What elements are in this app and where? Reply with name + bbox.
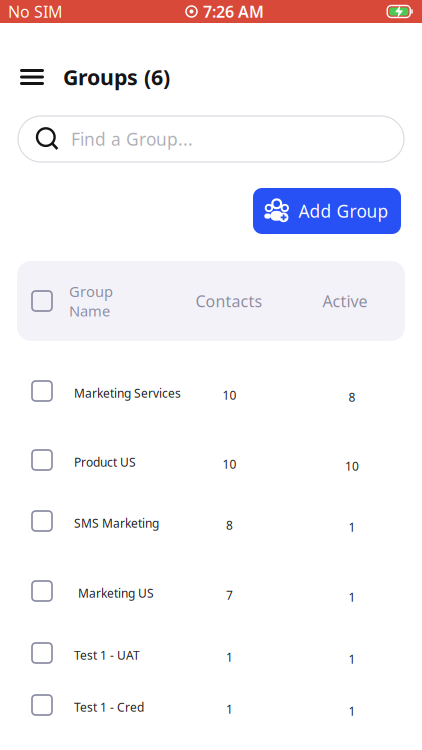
staticText: Active — [322, 290, 367, 312]
button[interactable]: Menu — [11, 58, 53, 96]
staticText: Group Name — [69, 281, 113, 320]
staticText: 1 — [348, 589, 355, 605]
staticText: 10 — [222, 456, 236, 472]
staticText: 1 — [226, 701, 233, 717]
staticText: Add Group — [298, 199, 388, 222]
staticText: Marketing US — [78, 585, 154, 601]
button[interactable]: Find a Group... — [18, 116, 404, 162]
button[interactable]: Add Group — [253, 188, 401, 234]
staticText: 8 — [226, 517, 233, 533]
staticText: 1 — [226, 649, 233, 665]
button[interactable]: Select all groups — [17, 261, 52, 341]
button[interactable]: Test 1 - Cred — [0, 687, 422, 723]
button[interactable]: SMS Marketing — [0, 479, 422, 563]
button[interactable]: Marketing US — [0, 563, 422, 619]
staticText: No SIM — [8, 1, 63, 22]
staticText: 10 — [345, 458, 359, 474]
staticText: 1 — [348, 519, 355, 535]
staticText: 1 — [348, 703, 355, 719]
button[interactable]: Marketing Services — [0, 341, 422, 441]
staticText: Find a Group... — [71, 127, 193, 150]
staticText: Test 1 - UAT — [74, 647, 140, 663]
staticText: 8 — [348, 389, 355, 405]
staticText: Contacts — [195, 290, 262, 312]
staticText: Marketing Services — [74, 385, 181, 401]
staticText: Product US — [74, 454, 136, 470]
staticText: 7:26 AM — [203, 1, 264, 22]
staticText: 1 — [348, 651, 355, 667]
button[interactable]: Product US — [0, 441, 422, 479]
staticText: Groups (6) — [63, 63, 170, 91]
staticText: SMS Marketing — [74, 515, 159, 531]
staticText: Test 1 - Cred — [74, 699, 144, 715]
staticText: 10 — [222, 387, 236, 403]
staticText: 7 — [226, 587, 233, 603]
button[interactable]: Test 1 - UAT — [0, 619, 422, 687]
